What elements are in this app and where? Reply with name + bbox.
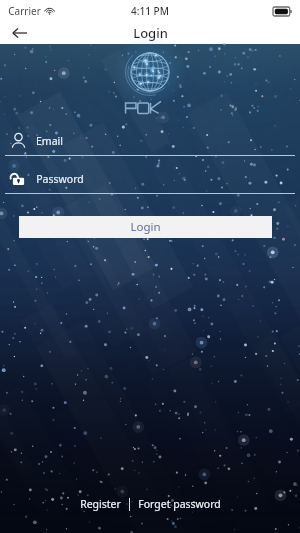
staticText: Forget password — [138, 497, 221, 511]
staticText: Login — [133, 24, 168, 42]
staticText: 4:11 PM — [131, 4, 169, 18]
staticText: Carrier — [8, 4, 41, 18]
button[interactable]: Password — [0, 170, 300, 194]
button[interactable]: Register — [72, 493, 129, 515]
staticText: Register — [80, 497, 121, 511]
staticText: Email — [36, 134, 63, 148]
button[interactable]: Email — [0, 132, 300, 156]
button[interactable]: Login — [19, 216, 272, 238]
button[interactable]: Back — [6, 22, 32, 44]
staticText: Login — [130, 219, 161, 235]
button[interactable]: Forget password — [130, 493, 229, 515]
staticText: Password — [36, 172, 84, 186]
